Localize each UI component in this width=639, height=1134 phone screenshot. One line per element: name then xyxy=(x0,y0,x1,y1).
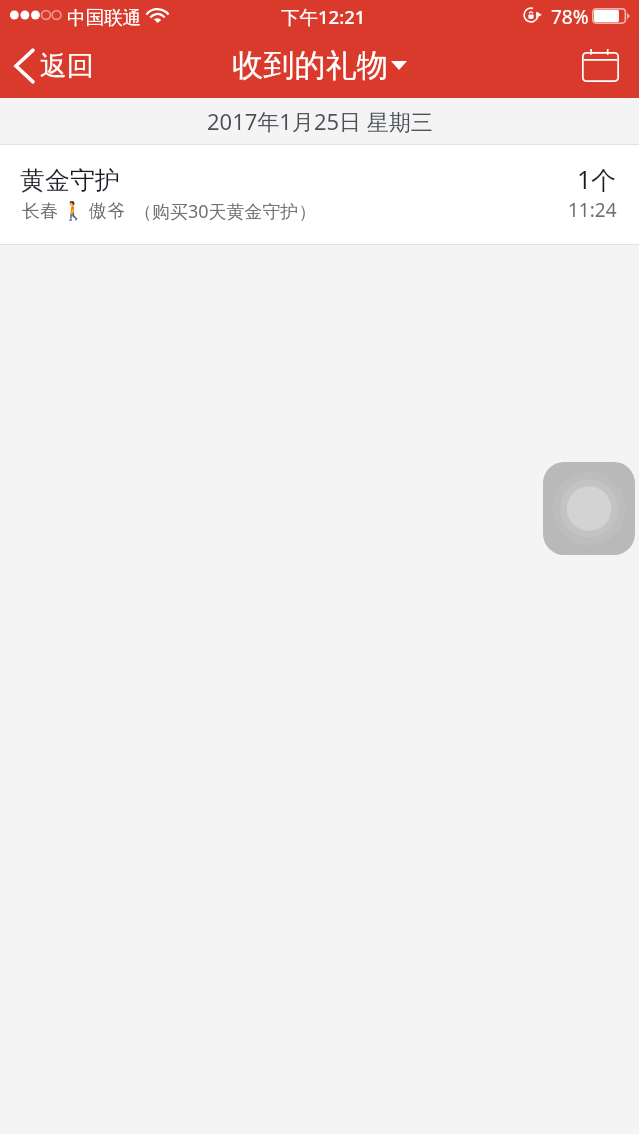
staticText: 长春 xyxy=(22,200,58,223)
staticText: 黄金守护 xyxy=(20,165,120,196)
staticText: 傲爷 xyxy=(89,200,125,223)
staticText: 收到的礼物 xyxy=(232,46,388,85)
staticText: 11:24 xyxy=(568,197,617,223)
button[interactable]: 黄金守护 xyxy=(0,145,639,244)
staticText: （购买30天黄金守护） xyxy=(134,199,317,224)
button[interactable]: 返回 xyxy=(0,42,106,90)
staticText: 1个 xyxy=(577,162,617,196)
button[interactable]: AssistiveTouch xyxy=(543,462,635,555)
staticText: 下午12:21 xyxy=(281,4,366,29)
staticText: 中国联通 xyxy=(67,6,141,29)
staticText: 🚶 xyxy=(62,200,85,221)
button[interactable]: 收到的礼物 xyxy=(222,40,415,91)
staticText: 78% xyxy=(551,4,589,30)
button[interactable]: Calendar xyxy=(571,39,630,92)
staticText: 2017年1月25日 星期三 xyxy=(207,106,433,136)
staticText: 返回 xyxy=(40,49,94,83)
